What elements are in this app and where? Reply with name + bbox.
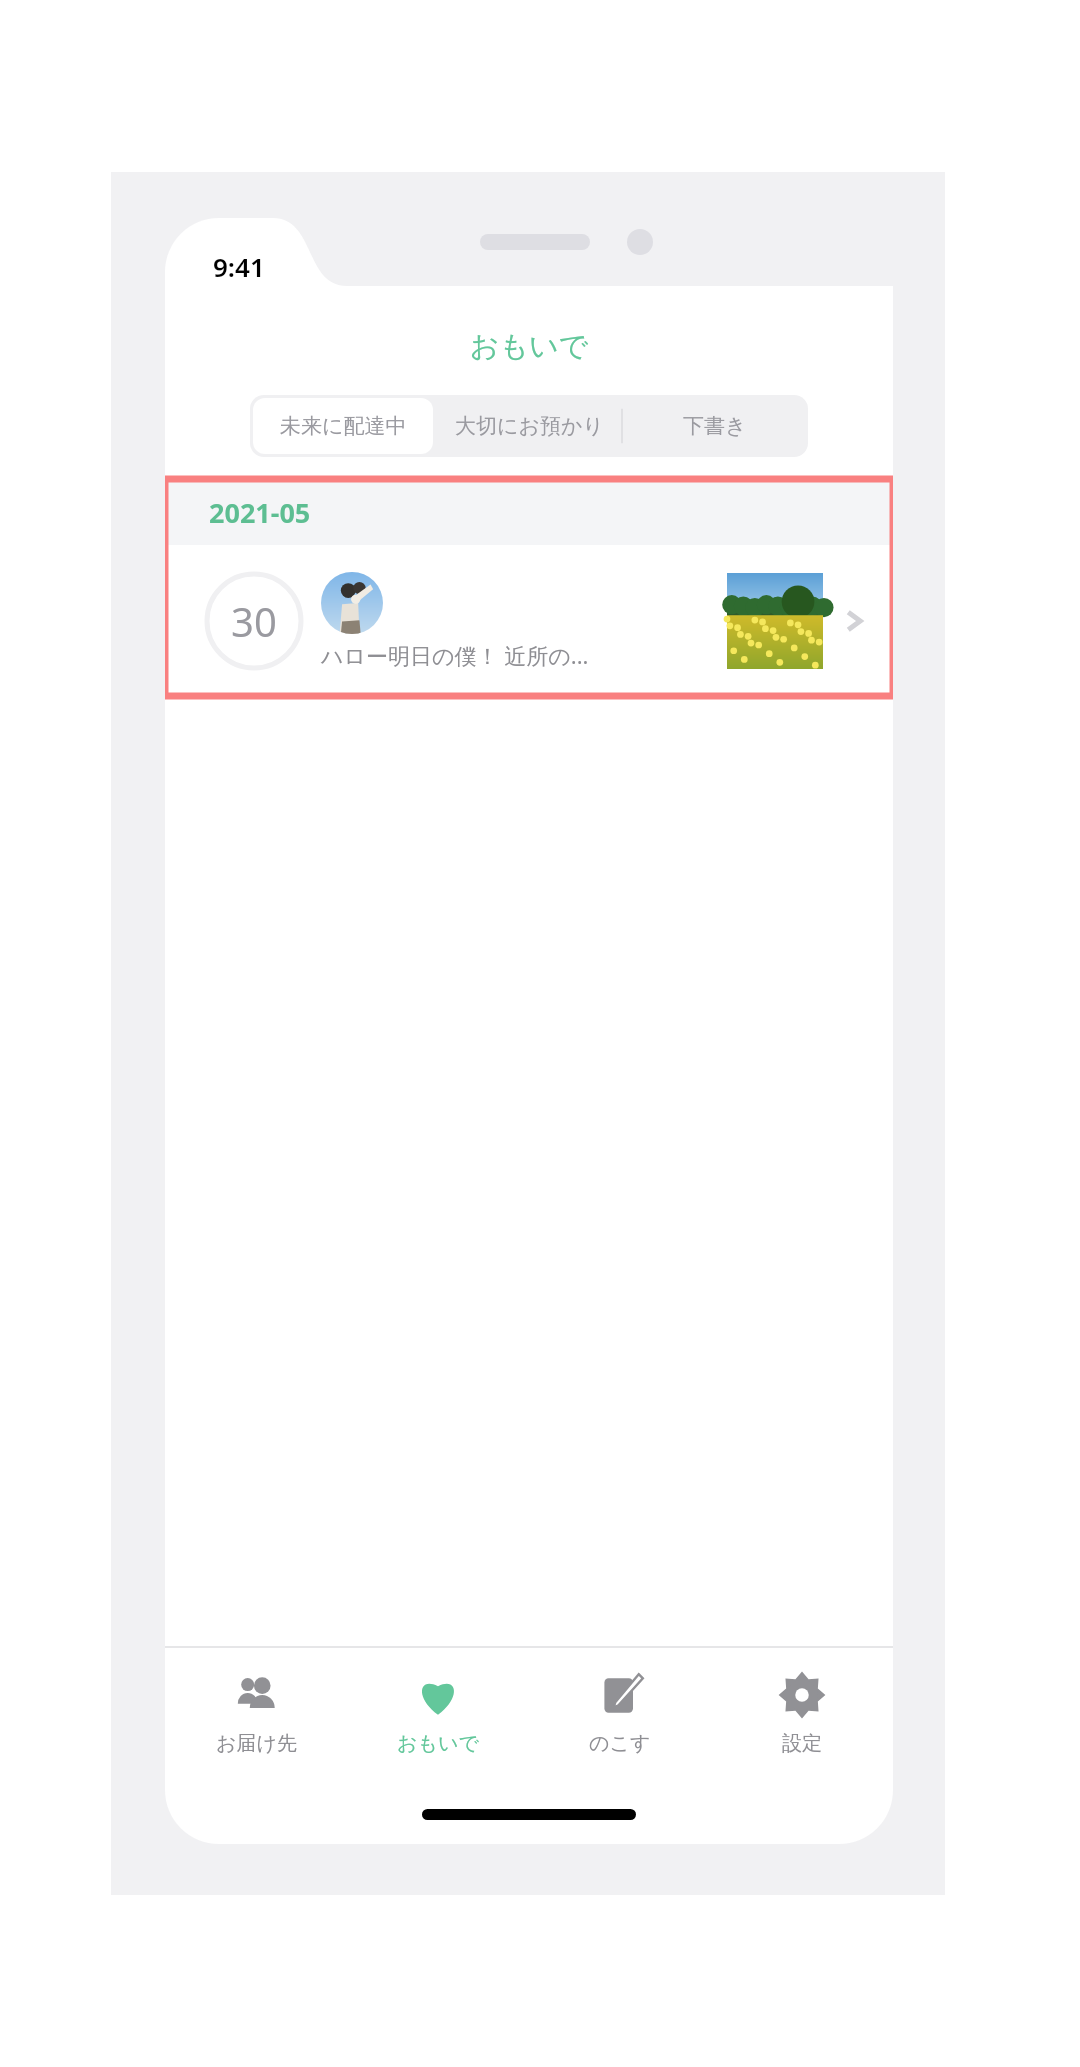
staticText: 30 xyxy=(231,594,277,648)
staticText: 未来に配達中 xyxy=(280,413,407,439)
staticText: 2021-05 xyxy=(209,494,311,531)
staticText: 下書き xyxy=(683,413,747,439)
staticText: お届け先 xyxy=(216,1731,297,1756)
button[interactable]: 大切にお預かり xyxy=(436,395,622,457)
button[interactable]: 30 xyxy=(165,545,893,696)
button[interactable]: おもいで xyxy=(347,1649,529,1783)
staticText: 設定 xyxy=(782,1731,822,1756)
staticText: おもいで xyxy=(397,1731,479,1756)
staticText: のこす xyxy=(589,1731,651,1756)
button[interactable]: 設定 xyxy=(711,1649,893,1783)
staticText: おもいで xyxy=(165,328,893,365)
staticText: 大切にお預かり xyxy=(455,413,604,439)
staticText: ハロー明日の僕！ 近所の... xyxy=(321,640,589,670)
button[interactable]: 下書き xyxy=(622,395,808,457)
button[interactable]: 未来に配達中 xyxy=(253,398,433,454)
button[interactable]: のこす xyxy=(529,1649,711,1783)
button[interactable]: お届け先 xyxy=(165,1649,347,1783)
staticText: 9:41 xyxy=(213,249,265,284)
